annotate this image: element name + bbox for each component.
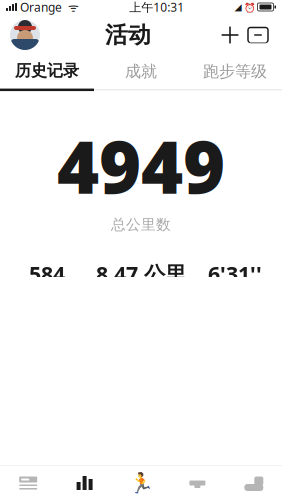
staticText: 🏃 [128, 472, 153, 494]
staticText: 历史记录 [15, 61, 79, 81]
staticText: 10.81 公里 6'08''/公里 01:06:19 [78, 441, 216, 476]
button[interactable]: 收件箱 [244, 21, 272, 49]
button[interactable]: 历史记录 [0, 56, 94, 88]
staticText: 星期一 [78, 467, 126, 487]
button[interactable]: 个人资料 [10, 20, 40, 50]
button[interactable]: 俱乐部 [169, 466, 226, 500]
button[interactable]: 装备 [226, 466, 282, 500]
button[interactable]: 添加 [216, 21, 244, 49]
button[interactable]: 星期一 [0, 472, 282, 500]
staticText: Orange [17, 0, 62, 15]
staticText: 总公里数 [111, 216, 171, 234]
button[interactable]: 活动 [56, 466, 113, 500]
staticText: 跑步等级 [203, 62, 267, 81]
staticText: ◢ [234, 2, 241, 12]
staticText: ᯤ [62, 0, 79, 15]
staticText: 6'31'' [208, 260, 262, 288]
staticText: 8.47 公里 [96, 260, 186, 288]
button[interactable]: 动态 [0, 466, 56, 500]
staticText: › [259, 487, 268, 500]
button[interactable]: 成就 [94, 56, 188, 88]
staticText: 584 [29, 260, 65, 288]
staticText: 活动 [105, 21, 151, 49]
button[interactable]: 开始跑步 [113, 466, 169, 500]
staticText: 星期一 夜跑 [78, 490, 157, 500]
button[interactable]: 跑步等级 [188, 56, 282, 88]
staticText: 成就 [125, 62, 157, 81]
staticText: 4949 [57, 118, 225, 214]
staticText: 上午10:31 [129, 0, 184, 15]
staticText: ⏰ [241, 1, 255, 13]
